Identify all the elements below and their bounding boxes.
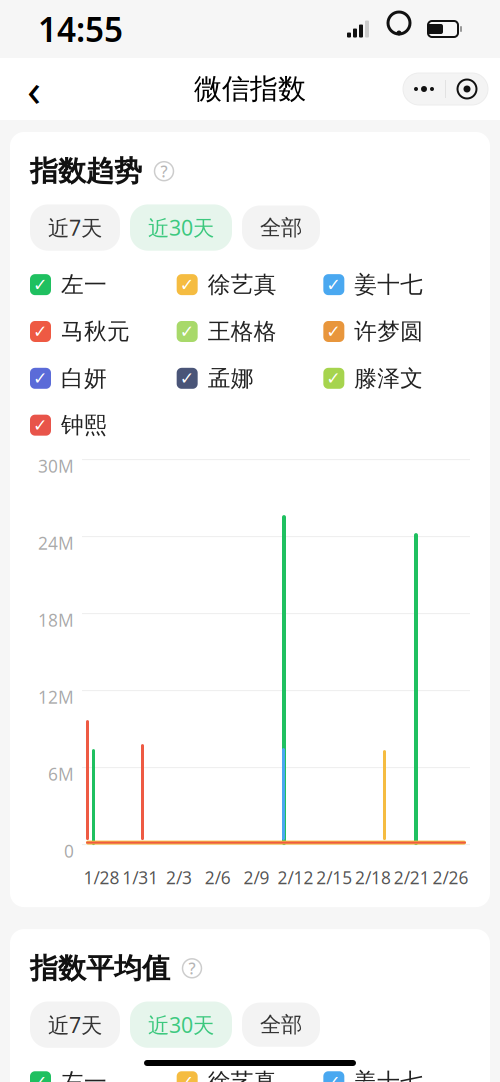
button[interactable]: 返回 <box>12 67 56 111</box>
staticText: 6M <box>48 763 74 786</box>
button[interactable]: 近30天 <box>130 204 232 251</box>
staticText: ✓ <box>326 322 341 341</box>
staticText: ✓ <box>326 1072 341 1082</box>
button[interactable]: 近7天 <box>30 1001 120 1048</box>
staticText: ✓ <box>33 322 48 341</box>
staticText: 全部 <box>260 1012 302 1038</box>
staticText: 2/12 <box>277 866 313 889</box>
staticText: 白妍 <box>61 364 107 392</box>
button[interactable]: ✓ <box>323 318 423 345</box>
staticText: 许梦圆 <box>354 318 423 345</box>
staticText: 12M <box>38 686 74 709</box>
staticText: ✓ <box>33 1072 48 1082</box>
staticText: ✓ <box>180 322 195 341</box>
staticText: 2/3 <box>166 866 192 889</box>
button[interactable]: ✓ <box>30 364 107 392</box>
staticText: 滕泽文 <box>354 364 423 392</box>
staticText: 2/18 <box>355 866 391 889</box>
staticText: ✓ <box>33 415 48 435</box>
staticText: 2/9 <box>244 866 270 889</box>
staticText: 全部 <box>260 214 302 241</box>
staticText: ✓ <box>33 275 48 294</box>
staticText: 钟熙 <box>61 411 107 439</box>
staticText: 18M <box>38 609 74 632</box>
staticText: 微信指数 <box>194 72 306 106</box>
staticText: 指数趋势 <box>30 154 142 188</box>
button[interactable]: ✓ <box>177 1068 277 1082</box>
staticText: 姜十七 <box>354 271 423 298</box>
button[interactable]: ✓ <box>177 271 277 298</box>
staticText: 近30天 <box>148 213 214 242</box>
staticText: 姜十七 <box>354 1068 423 1082</box>
button[interactable]: 近7天 <box>30 204 120 251</box>
button[interactable]: ✓ <box>30 271 107 298</box>
staticText: 2/26 <box>433 866 469 889</box>
staticText: ? <box>160 161 167 182</box>
button[interactable]: 全部 <box>242 205 320 250</box>
staticText: 徐艺真 <box>208 1068 277 1082</box>
button[interactable]: 说明 <box>151 158 177 184</box>
staticText: ? <box>188 958 195 979</box>
staticText: 1/28 <box>83 866 119 889</box>
staticText: 14:55 <box>38 7 123 51</box>
button[interactable]: 关闭 <box>446 73 488 105</box>
staticText: 徐艺真 <box>208 271 277 298</box>
staticText: 左一 <box>61 271 107 298</box>
staticText: 孟娜 <box>208 364 254 392</box>
button[interactable]: ✓ <box>30 411 107 439</box>
staticText: 1/31 <box>122 866 158 889</box>
staticText: ✓ <box>180 275 195 294</box>
button[interactable]: ✓ <box>323 1068 423 1082</box>
button[interactable]: ✓ <box>177 318 277 345</box>
staticText: 2/15 <box>316 866 352 889</box>
staticText: ✓ <box>180 1072 195 1082</box>
staticText: 近30天 <box>148 1010 214 1039</box>
staticText: 24M <box>38 532 74 555</box>
staticText: 2/21 <box>394 866 430 889</box>
staticText: ✓ <box>326 275 341 294</box>
button[interactable]: ✓ <box>323 271 423 298</box>
staticText: 左一 <box>61 1068 107 1082</box>
button[interactable]: ✓ <box>177 364 254 392</box>
staticText: ✓ <box>180 368 195 388</box>
button[interactable]: 全部 <box>242 1003 320 1047</box>
staticText: 0 <box>64 840 74 863</box>
button[interactable]: 更多 <box>403 73 445 105</box>
button[interactable]: 近30天 <box>130 1001 232 1048</box>
staticText: 指数平均值 <box>30 951 170 985</box>
staticText: ✓ <box>326 368 341 388</box>
staticText: 近7天 <box>48 1010 102 1039</box>
staticText: 2/6 <box>205 866 231 889</box>
button[interactable]: ✓ <box>30 1068 107 1082</box>
staticText: ‹ <box>27 59 41 119</box>
button[interactable]: ✓ <box>323 364 423 392</box>
staticText: 30M <box>38 455 74 478</box>
staticText: 近7天 <box>48 213 102 242</box>
staticText: 王格格 <box>208 318 277 345</box>
button[interactable]: ✓ <box>30 318 130 345</box>
staticText: ✓ <box>33 368 48 388</box>
staticText: 马秋元 <box>61 318 130 345</box>
button[interactable]: 说明 <box>179 955 205 981</box>
